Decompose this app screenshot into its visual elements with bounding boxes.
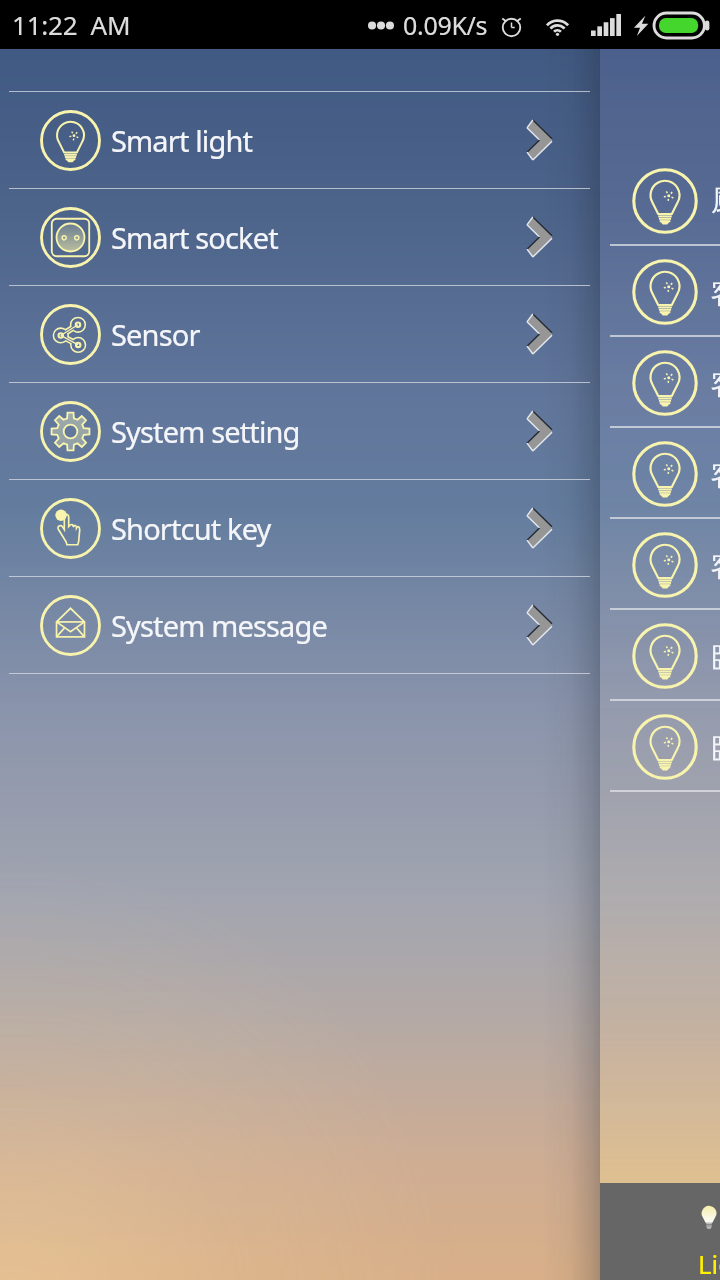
button[interactable]: Sensor <box>0 286 600 382</box>
button[interactable]: Smart light <box>0 92 600 188</box>
button[interactable]: 客厅灯4 <box>0 519 720 610</box>
staticText: 客厅灯3 <box>711 455 720 493</box>
button[interactable]: System setting <box>0 383 600 479</box>
staticText: Sensor <box>111 315 200 354</box>
staticText: 客厅灯1 <box>711 273 720 311</box>
button[interactable]: 卧室灯1 <box>0 610 720 701</box>
button[interactable]: Smart socket <box>0 189 600 285</box>
staticText: 0.09K/s <box>403 8 488 42</box>
button[interactable]: 客厅灯1 <box>0 246 720 337</box>
staticText: 卧室灯2 <box>711 728 720 766</box>
staticText: Smart socket <box>111 218 278 257</box>
button[interactable]: 客厅灯2 <box>0 337 720 428</box>
button[interactable]: System message <box>0 577 600 673</box>
staticText: 客厅灯4 <box>711 546 720 584</box>
staticText: 客厅灯2 <box>711 364 720 402</box>
button[interactable]: 客厅灯3 <box>0 428 720 519</box>
staticText: 厨房灯 <box>711 183 720 218</box>
staticText: 卧室灯1 <box>711 637 720 675</box>
button[interactable]: 厨房灯 <box>0 155 720 246</box>
staticText: 11:22 AM <box>12 7 131 42</box>
staticText: Smart light <box>111 121 253 160</box>
staticText: Light <box>698 1246 720 1280</box>
staticText: Shortcut key <box>111 509 271 548</box>
staticText: System message <box>111 606 327 645</box>
button[interactable]: Light <box>600 1183 720 1280</box>
staticText: System setting <box>111 412 300 451</box>
button[interactable]: Shortcut key <box>0 480 600 576</box>
button[interactable]: 卧室灯2 <box>0 701 720 792</box>
